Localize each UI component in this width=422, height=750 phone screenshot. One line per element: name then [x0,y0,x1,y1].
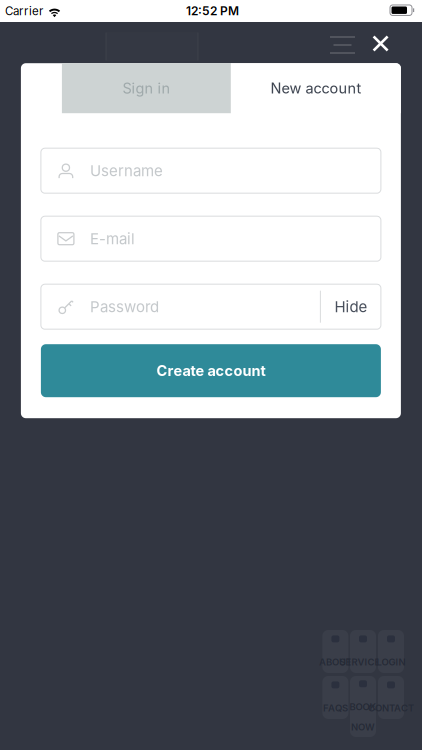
button[interactable]: New account [231,63,401,113]
staticText: Username [90,162,163,180]
staticText: ABOUT [319,656,352,668]
button[interactable]: Sign in [62,63,231,113]
button[interactable]: Create account [41,344,381,397]
staticText: 12:52 PM [186,4,239,18]
staticText: NOW [351,721,375,733]
button[interactable]: Close [372,35,389,52]
staticText: SERVICES [339,656,386,668]
staticText: Create account [156,362,265,379]
staticText: CONTACT [368,702,414,714]
button[interactable]: Hide [321,284,381,329]
staticText: Password [90,298,159,316]
button[interactable]: Menu [330,36,355,54]
staticText: New account [270,80,361,97]
staticText: LOGIN [376,656,405,668]
staticText: E-mail [90,230,135,248]
staticText: Hide [334,298,367,316]
staticText: BOOK [349,701,376,712]
staticText: Sign in [122,80,170,97]
staticText: FAQS [323,702,348,714]
staticText: Carrier [5,4,43,18]
